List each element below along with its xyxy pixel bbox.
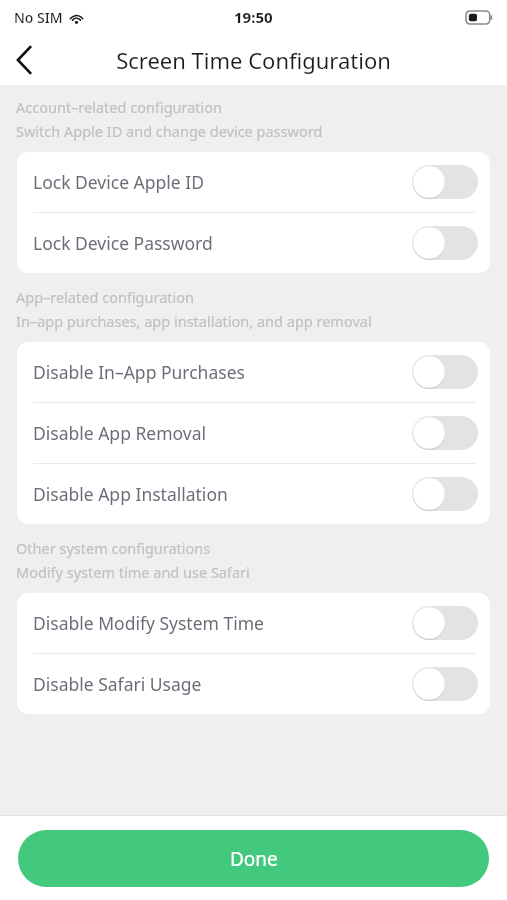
staticText: Screen Time Configuration	[116, 45, 391, 75]
button[interactable]: Done	[18, 830, 489, 887]
button[interactable]: Disable App Removal	[17, 403, 490, 463]
staticText: Disable Safari Usage	[33, 672, 412, 696]
staticText: Lock Device Apple ID	[33, 170, 412, 194]
staticText: Lock Device Password	[33, 231, 412, 255]
staticText: Switch Apple ID and change device passwo…	[16, 121, 323, 141]
staticText: Disable App Removal	[33, 421, 412, 445]
button[interactable]: Lock Device Apple ID	[17, 152, 490, 212]
staticText: Disable App Installation	[33, 482, 412, 506]
staticText: Modify system time and use Safari	[16, 562, 250, 582]
staticText: No SIM	[14, 8, 63, 27]
staticText: Account–related configuration	[16, 97, 223, 117]
staticText: Disable Modify System Time	[33, 611, 412, 635]
staticText: Disable In–App Purchases	[33, 360, 412, 384]
button[interactable]: Lock Device Password	[17, 213, 490, 273]
button[interactable]: Disable Safari Usage	[17, 654, 490, 714]
staticText: Other system configurations	[16, 538, 211, 558]
staticText: In–app purchases, app installation, and …	[16, 311, 372, 331]
button[interactable]: Disable Modify System Time	[17, 593, 490, 653]
staticText: 19:50	[234, 7, 273, 27]
button[interactable]: Back	[0, 36, 48, 84]
button[interactable]: Disable In–App Purchases	[17, 342, 490, 402]
staticText: Done	[230, 846, 278, 872]
button[interactable]: Disable App Installation	[17, 464, 490, 524]
staticText: App–related configuration	[16, 287, 195, 307]
